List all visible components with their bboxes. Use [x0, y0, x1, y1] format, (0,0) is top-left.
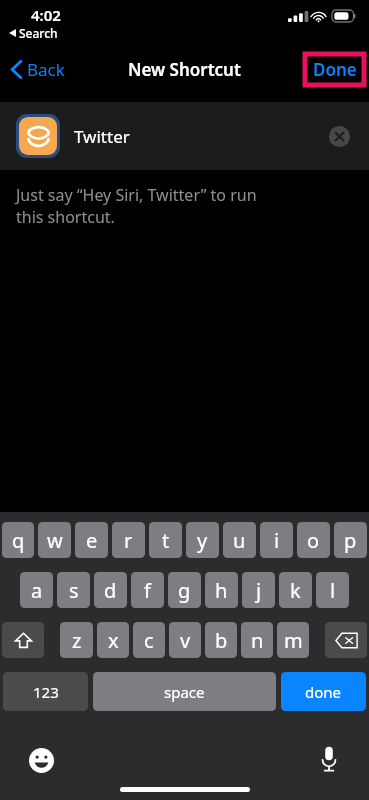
button[interactable]: Shift [2, 622, 44, 658]
staticText: Search [19, 25, 58, 41]
button[interactable]: Twitter [0, 102, 369, 170]
button[interactable]: v [169, 622, 201, 658]
staticText: h [215, 577, 228, 604]
button[interactable]: done [281, 672, 366, 711]
staticText: v [180, 627, 191, 654]
staticText: m [284, 627, 303, 654]
button[interactable]: 123 [3, 672, 88, 711]
button[interactable]: h [205, 572, 238, 608]
button[interactable]: i [260, 522, 293, 558]
staticText: o [307, 527, 320, 554]
button[interactable]: w [38, 522, 71, 558]
staticText: l [330, 577, 336, 604]
staticText: Just say “Hey Siri, Twitter” to run this… [16, 184, 257, 228]
staticText: Done [313, 58, 357, 81]
button[interactable]: t [149, 522, 182, 558]
staticText: 123 [33, 682, 59, 702]
button[interactable]: u [223, 522, 256, 558]
staticText: x [108, 627, 119, 654]
button[interactable]: r [112, 522, 145, 558]
button[interactable]: k [279, 572, 312, 608]
staticText: 4:02 [31, 5, 61, 25]
staticText: t [162, 527, 170, 554]
button[interactable]: d [94, 572, 127, 608]
button[interactable]: q [2, 522, 34, 558]
button[interactable]: g [168, 572, 201, 608]
button[interactable]: Clear name [325, 122, 353, 150]
button[interactable]: Emoji [26, 745, 56, 775]
staticText: r [124, 527, 133, 554]
button[interactable]: x [97, 622, 129, 658]
staticText: Twitter [74, 125, 130, 148]
staticText: y [197, 527, 208, 554]
staticText: w [47, 527, 63, 554]
staticText: u [233, 527, 246, 554]
button[interactable]: o [297, 522, 330, 558]
staticText: n [251, 627, 264, 654]
staticText: i [274, 527, 280, 554]
button[interactable]: Dictation [313, 743, 345, 775]
button[interactable]: z [60, 622, 93, 658]
staticText: q [12, 527, 25, 554]
button[interactable]: Backspace [325, 622, 367, 658]
button[interactable]: Done [305, 54, 364, 85]
button[interactable]: y [186, 522, 219, 558]
staticText: space [164, 682, 205, 702]
button[interactable]: m [277, 622, 309, 658]
button[interactable]: e [75, 522, 108, 558]
staticText: e [86, 527, 98, 554]
button[interactable]: f [131, 572, 164, 608]
staticText: z [72, 627, 82, 654]
staticText: b [215, 627, 228, 654]
staticText: d [104, 577, 117, 604]
staticText: g [178, 577, 191, 604]
staticText: k [290, 577, 301, 604]
button[interactable]: j [242, 572, 275, 608]
staticText: a [31, 577, 43, 604]
staticText: done [305, 682, 342, 702]
staticText: s [69, 577, 79, 604]
button[interactable]: space [93, 672, 276, 711]
staticText: f [144, 577, 151, 604]
button[interactable]: s [57, 572, 90, 608]
staticText: j [256, 577, 262, 604]
button[interactable]: c [133, 622, 165, 658]
staticText: Back [27, 58, 65, 81]
button[interactable]: a [20, 572, 53, 608]
staticText: New Shortcut [128, 58, 241, 81]
button[interactable]: l [316, 572, 349, 608]
staticText: p [344, 527, 357, 554]
button[interactable]: Back [6, 52, 70, 87]
staticText: c [144, 627, 154, 654]
button[interactable]: p [334, 522, 367, 558]
button[interactable]: b [205, 622, 237, 658]
button[interactable]: n [241, 622, 273, 658]
